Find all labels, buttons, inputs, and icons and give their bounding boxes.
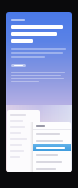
- button[interactable]: Navigation list: [7, 110, 40, 172]
- button[interactable]: Option 6: [33, 165, 71, 172]
- button[interactable]: Menu header: [33, 122, 71, 129]
- button[interactable]: Option 2: [33, 137, 71, 144]
- button[interactable]: Selected option: [33, 144, 71, 151]
- button[interactable]: Option 1: [33, 130, 71, 137]
- button[interactable]: Learn more: [11, 64, 26, 67]
- button[interactable]: Option 4: [33, 151, 71, 158]
- button[interactable]: Option 5: [33, 158, 71, 165]
